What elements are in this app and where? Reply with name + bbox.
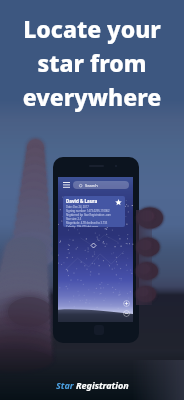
staticText: Locate your star from everywhere: [0, 13, 184, 112]
staticText: Star size: 2.5: [66, 217, 82, 221]
staticText: Star: [56, 379, 74, 391]
button[interactable]: Menu: [62, 181, 70, 189]
button[interactable]: Zoom in: [123, 300, 130, 307]
button[interactable]: David & Laura: [63, 196, 125, 227]
staticText: Registered by: Star Registration .com: [66, 213, 111, 217]
staticText: David & Laura: [66, 198, 98, 204]
staticText: Signing number: 1473-0295-110062: [66, 209, 110, 213]
button[interactable]: Star: [56, 379, 129, 391]
staticText: Search: [85, 183, 98, 188]
staticText: Registration: [76, 379, 129, 391]
staticText: Magnitude: 4.78 declined to 3.735: [66, 221, 108, 225]
button[interactable]: Zoom out: [123, 310, 130, 317]
button[interactable]: Search: [73, 181, 129, 189]
staticText: Date: Dec 24, 2017: [66, 205, 89, 209]
staticText: Celestis: 19h 47 light years: [66, 225, 99, 227]
